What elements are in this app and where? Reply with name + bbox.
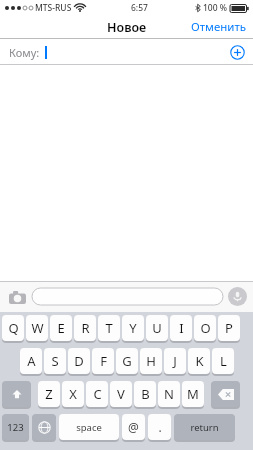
staticText: MTS-RUS	[35, 2, 72, 14]
button[interactable]: O	[194, 315, 216, 343]
button[interactable]: Camera	[6, 286, 28, 308]
staticText: .	[158, 419, 162, 435]
button[interactable]: Add contact	[228, 43, 246, 61]
button[interactable]: H	[140, 348, 162, 376]
button[interactable]: F	[92, 348, 114, 376]
button[interactable]: U	[146, 315, 168, 343]
button[interactable]: Q	[2, 315, 24, 343]
staticText: Отменить	[191, 19, 247, 35]
button[interactable]: S	[44, 348, 66, 376]
staticText: R	[81, 319, 90, 337]
staticText: 100 %	[203, 2, 228, 14]
button[interactable]: return	[174, 414, 235, 442]
button[interactable]: W	[26, 315, 48, 343]
button[interactable]: K	[188, 348, 210, 376]
button[interactable]: V	[110, 381, 132, 409]
button[interactable]: I	[170, 315, 192, 343]
staticText: I	[179, 319, 184, 337]
staticText: B	[141, 385, 150, 403]
button[interactable]: M	[182, 381, 204, 409]
button[interactable]: Switch keyboard	[32, 414, 56, 442]
staticText: Y	[129, 319, 137, 337]
button[interactable]: N	[158, 381, 180, 409]
button[interactable]: T	[98, 315, 120, 343]
button[interactable]: Z	[38, 381, 60, 409]
staticText: M	[187, 385, 199, 403]
button[interactable]: Y	[122, 315, 144, 343]
button[interactable]: Shift	[2, 381, 31, 409]
staticText: S	[51, 352, 59, 370]
button[interactable]: E	[50, 315, 72, 343]
staticText: return	[190, 421, 219, 434]
staticText: F	[100, 352, 107, 370]
staticText: A	[27, 352, 36, 370]
staticText: O	[200, 319, 211, 337]
staticText: X	[69, 385, 77, 403]
button[interactable]: D	[68, 348, 90, 376]
staticText: U	[152, 319, 162, 337]
staticText: P	[225, 319, 233, 337]
staticText: V	[117, 385, 125, 403]
staticText: Кому:	[9, 45, 40, 60]
staticText: space	[76, 421, 102, 434]
staticText: N	[164, 385, 174, 403]
button[interactable]: P	[218, 315, 240, 343]
staticText: @	[128, 419, 139, 435]
staticText: G	[122, 352, 132, 370]
staticText: H	[146, 352, 156, 370]
staticText: T	[105, 319, 113, 337]
button[interactable]: .	[148, 414, 171, 442]
button[interactable]: space	[59, 414, 119, 442]
button[interactable]: J	[164, 348, 186, 376]
staticText: W	[31, 319, 44, 337]
staticText: D	[74, 352, 84, 370]
button[interactable]: A	[20, 348, 42, 376]
button[interactable]: X	[62, 381, 84, 409]
button[interactable]: @	[122, 414, 145, 442]
staticText: K	[195, 352, 204, 370]
staticText: J	[173, 352, 177, 370]
staticText: E	[57, 319, 65, 337]
staticText: C	[93, 385, 102, 403]
button[interactable]: C	[86, 381, 108, 409]
staticText: Q	[8, 319, 19, 337]
button[interactable]: L	[212, 348, 234, 376]
staticText: Новое	[107, 19, 147, 36]
button[interactable]: Отменить	[185, 16, 253, 38]
staticText: Z	[45, 385, 53, 403]
button[interactable]: 123	[2, 414, 29, 442]
button[interactable]: Backspace	[211, 381, 240, 409]
staticText: L	[220, 352, 227, 370]
button[interactable]	[32, 288, 223, 305]
button[interactable]: Dictation	[228, 287, 247, 306]
button[interactable]: B	[134, 381, 156, 409]
button[interactable]: R	[74, 315, 96, 343]
staticText: 6:57	[131, 2, 148, 14]
button[interactable]: G	[116, 348, 138, 376]
staticText: 123	[7, 421, 24, 434]
